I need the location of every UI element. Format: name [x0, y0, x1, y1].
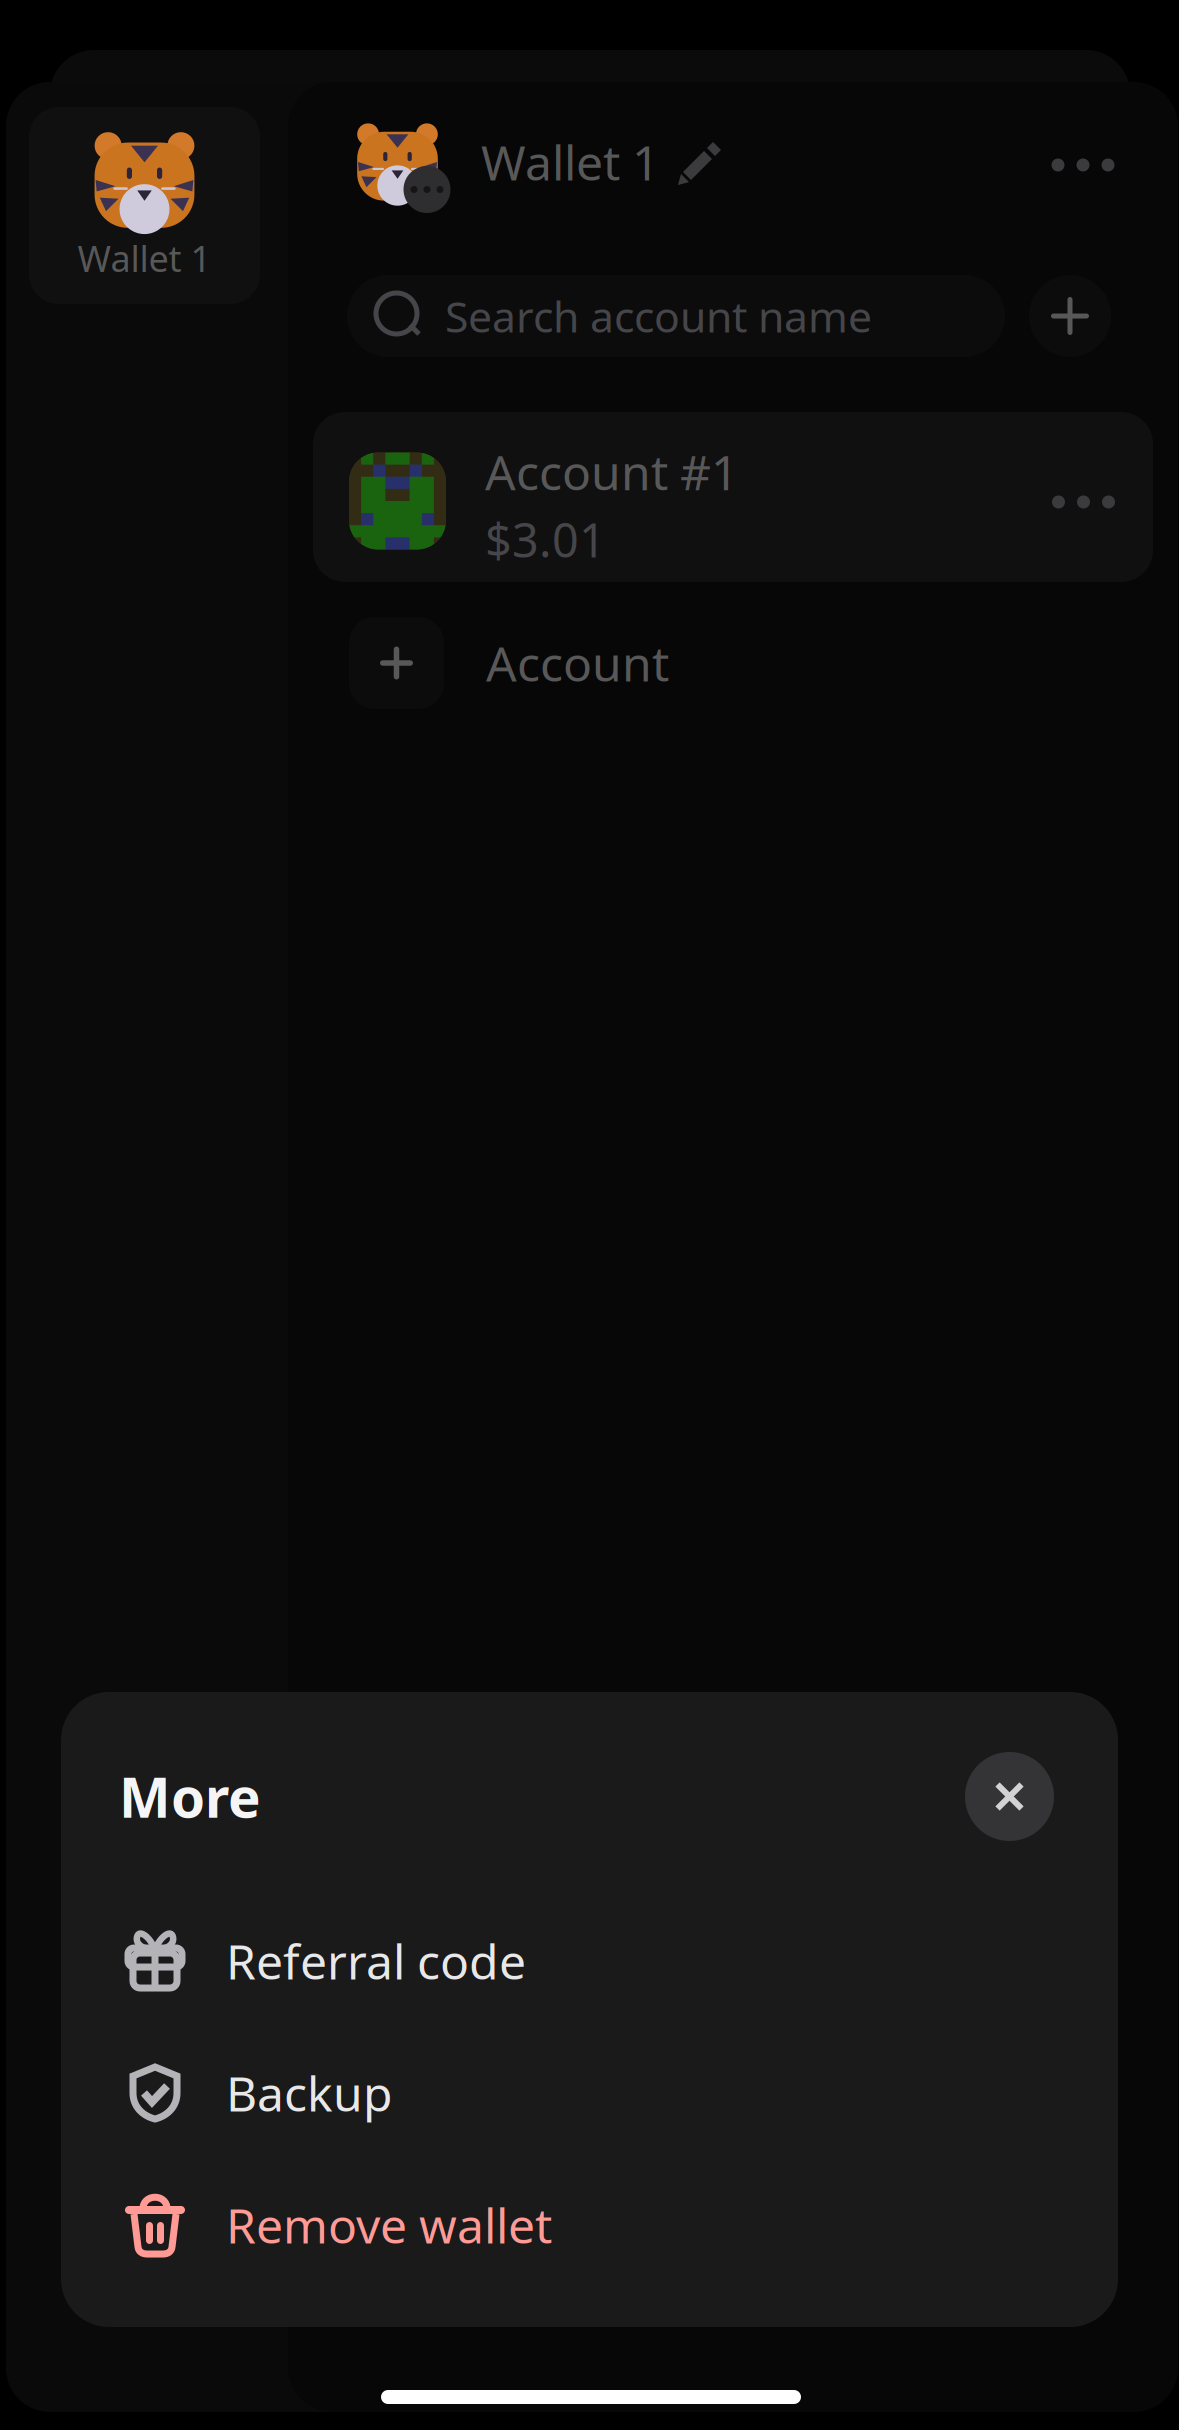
staticText: Wallet 1: [481, 130, 659, 194]
button[interactable]: Wallet options: [1028, 125, 1138, 205]
button[interactable]: Close: [965, 1752, 1054, 1841]
button[interactable]: Referral code: [61, 1895, 1118, 2027]
button[interactable]: Wallet 1: [350, 115, 721, 209]
button[interactable]: Add account: [1029, 275, 1111, 357]
staticText: Account: [486, 631, 669, 695]
button[interactable]: Remove wallet: [61, 2159, 1118, 2291]
staticText: Search account name: [445, 288, 872, 344]
button[interactable]: Backup: [61, 2027, 1118, 2159]
staticText: Remove wallet: [226, 2193, 552, 2257]
button[interactable]: Account: [349, 617, 849, 709]
staticText: $3.01: [485, 508, 606, 570]
button[interactable]: Wallet 1: [29, 107, 260, 304]
button[interactable]: Account #1: [313, 412, 1153, 582]
staticText: Referral code: [226, 1929, 526, 1993]
staticText: Backup: [226, 2061, 393, 2125]
staticText: Account #1: [485, 440, 738, 503]
staticText: Wallet 1: [77, 234, 211, 282]
staticText: More: [119, 1760, 261, 1833]
